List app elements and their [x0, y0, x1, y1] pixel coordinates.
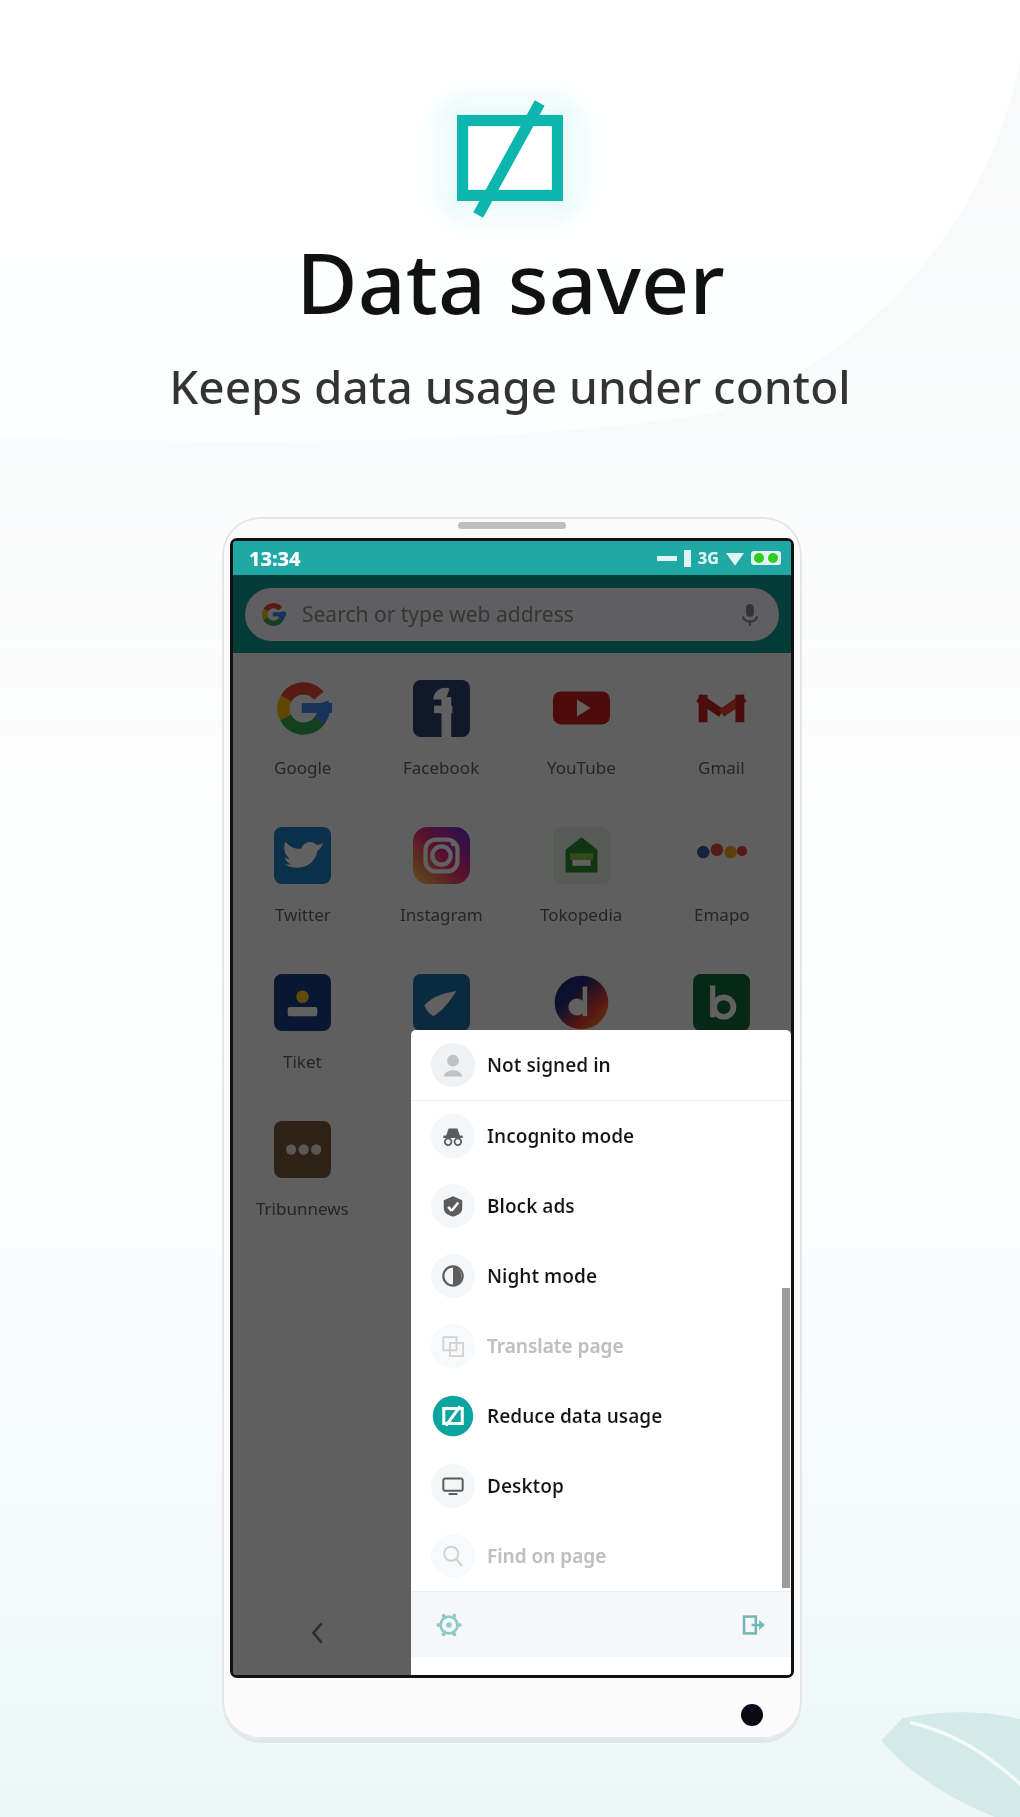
- button[interactable]: Facebook: [372, 680, 511, 827]
- staticText: 3G: [698, 547, 719, 569]
- button[interactable]: Incognito mode: [411, 1101, 791, 1171]
- staticText: Desktop: [487, 1473, 564, 1499]
- button[interactable]: YouTube: [511, 680, 651, 827]
- staticText: Tokopedia: [540, 903, 623, 926]
- button[interactable]: Bukalapak: [651, 974, 791, 1121]
- staticText: Emapo: [694, 903, 750, 926]
- button[interactable]: Settings: [435, 1611, 463, 1639]
- staticText: Facebook: [403, 756, 480, 779]
- button[interactable]: Gmail: [651, 680, 791, 827]
- staticText: Night mode: [487, 1263, 598, 1289]
- button[interactable]: Tokopedia: [511, 827, 651, 974]
- staticText: Keeps data usage under contol: [169, 355, 851, 418]
- button[interactable]: Reduce data usage: [411, 1381, 791, 1451]
- staticText: Not signed in: [487, 1052, 611, 1078]
- staticText: Dove: [421, 1050, 462, 1073]
- staticText: Search or type web address: [302, 600, 574, 629]
- staticText: Find on page: [487, 1543, 607, 1569]
- staticText: Data saver: [296, 224, 725, 338]
- staticText: Translate page: [487, 1333, 624, 1359]
- button[interactable]: Tribunnews: [233, 1121, 372, 1268]
- button[interactable]: Tiket: [233, 974, 372, 1121]
- button[interactable]: Instagram: [372, 827, 511, 974]
- button[interactable]: Night mode: [411, 1241, 791, 1311]
- button[interactable]: Back: [295, 1611, 339, 1655]
- button[interactable]: Voice search: [739, 600, 761, 630]
- staticText: Twitter: [275, 903, 331, 926]
- staticText: Incognito mode: [487, 1123, 635, 1149]
- staticText: Google: [274, 756, 332, 779]
- button[interactable]: Translate page: [411, 1311, 791, 1381]
- staticText: Detik: [561, 1050, 603, 1073]
- staticText: Gmail: [698, 756, 745, 779]
- button[interactable]: Detik: [511, 974, 651, 1121]
- button[interactable]: Desktop: [411, 1451, 791, 1521]
- staticText: Block ads: [487, 1193, 575, 1219]
- staticText: Reduce data usage: [487, 1403, 663, 1429]
- button[interactable]: Dove: [372, 974, 511, 1121]
- button[interactable]: Twitter: [233, 827, 372, 974]
- button[interactable]: Not signed in: [411, 1030, 791, 1100]
- button[interactable]: Search or type web address: [245, 588, 779, 641]
- staticText: Instagram: [400, 903, 483, 926]
- button[interactable]: Emapo: [651, 827, 791, 974]
- staticText: YouTube: [547, 756, 616, 779]
- button[interactable]: Exit: [739, 1611, 767, 1639]
- staticText: 13:34: [249, 545, 301, 572]
- button[interactable]: Find on page: [411, 1521, 791, 1591]
- staticText: Tiket: [283, 1050, 322, 1073]
- button[interactable]: Google: [233, 680, 372, 827]
- button[interactable]: Block ads: [411, 1171, 791, 1241]
- staticText: Tribunnews: [256, 1197, 349, 1220]
